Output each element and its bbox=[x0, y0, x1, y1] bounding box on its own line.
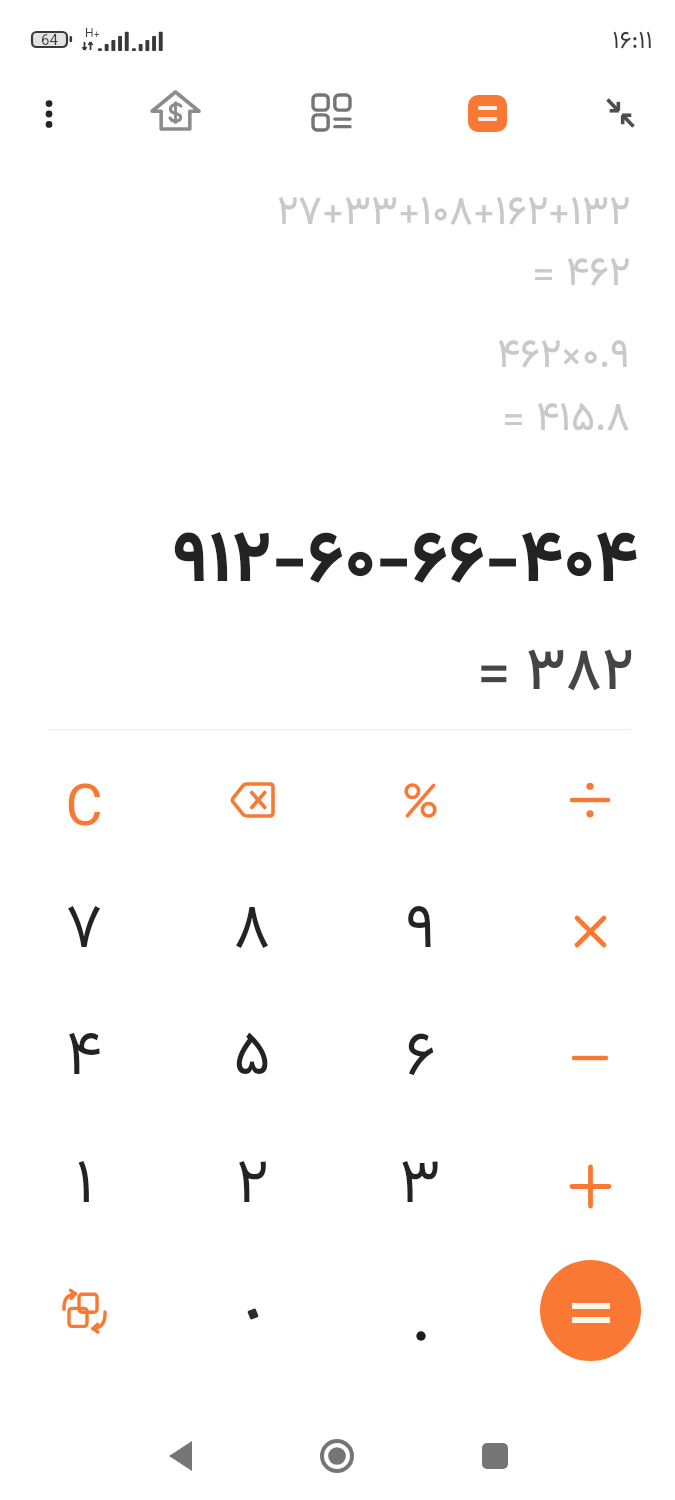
button[interactable]: Plus bbox=[506, 1123, 674, 1249]
button[interactable]: Thousands separator bbox=[168, 1248, 336, 1374]
button[interactable]: History bbox=[287, 72, 375, 144]
staticText: ۹ bbox=[405, 882, 436, 980]
button[interactable]: Five bbox=[168, 995, 336, 1121]
button[interactable]: Recent apps bbox=[440, 1412, 550, 1500]
button[interactable]: Nine bbox=[336, 868, 504, 994]
staticText: ۵ bbox=[233, 1009, 271, 1107]
staticText: ۲ bbox=[236, 1137, 269, 1235]
button[interactable]: Divide bbox=[506, 737, 674, 863]
staticText: ۷ bbox=[65, 882, 103, 980]
button[interactable]: Convert units bbox=[0, 1248, 168, 1374]
button[interactable]: Minus bbox=[506, 995, 674, 1121]
staticText: ۱ bbox=[75, 1137, 94, 1235]
staticText: H+ bbox=[85, 25, 100, 44]
staticText: ۶ bbox=[405, 1009, 436, 1107]
button[interactable]: Four bbox=[0, 995, 168, 1121]
staticText: 64 bbox=[33, 30, 66, 53]
button[interactable]: Collapse bbox=[576, 72, 664, 144]
button[interactable]: Home bbox=[282, 1412, 392, 1500]
button[interactable]: Seven bbox=[0, 868, 168, 994]
button[interactable]: Six bbox=[336, 995, 504, 1121]
button[interactable]: Loan calculator bbox=[131, 72, 219, 144]
button[interactable]: Clear bbox=[0, 737, 168, 863]
staticText: ۸ bbox=[233, 882, 271, 980]
button[interactable]: More options bbox=[17, 72, 81, 144]
button[interactable]: Eight bbox=[168, 868, 336, 994]
staticText: C bbox=[65, 767, 103, 856]
staticText: ۴ bbox=[66, 1009, 102, 1107]
staticText: ۱۶:۱۱ bbox=[612, 22, 653, 61]
button[interactable]: Result mode bbox=[443, 72, 531, 144]
button[interactable]: Percent bbox=[336, 737, 504, 863]
button[interactable]: Multiply bbox=[506, 868, 674, 994]
button[interactable]: Two bbox=[168, 1123, 336, 1249]
button[interactable]: Back bbox=[125, 1412, 235, 1500]
staticText: ۳ bbox=[399, 1137, 441, 1235]
button[interactable]: Equals bbox=[540, 1260, 641, 1361]
button[interactable]: Backspace bbox=[168, 737, 336, 863]
button[interactable]: One bbox=[0, 1123, 168, 1249]
button[interactable]: Decimal point bbox=[336, 1248, 504, 1374]
button[interactable]: Three bbox=[336, 1123, 504, 1249]
